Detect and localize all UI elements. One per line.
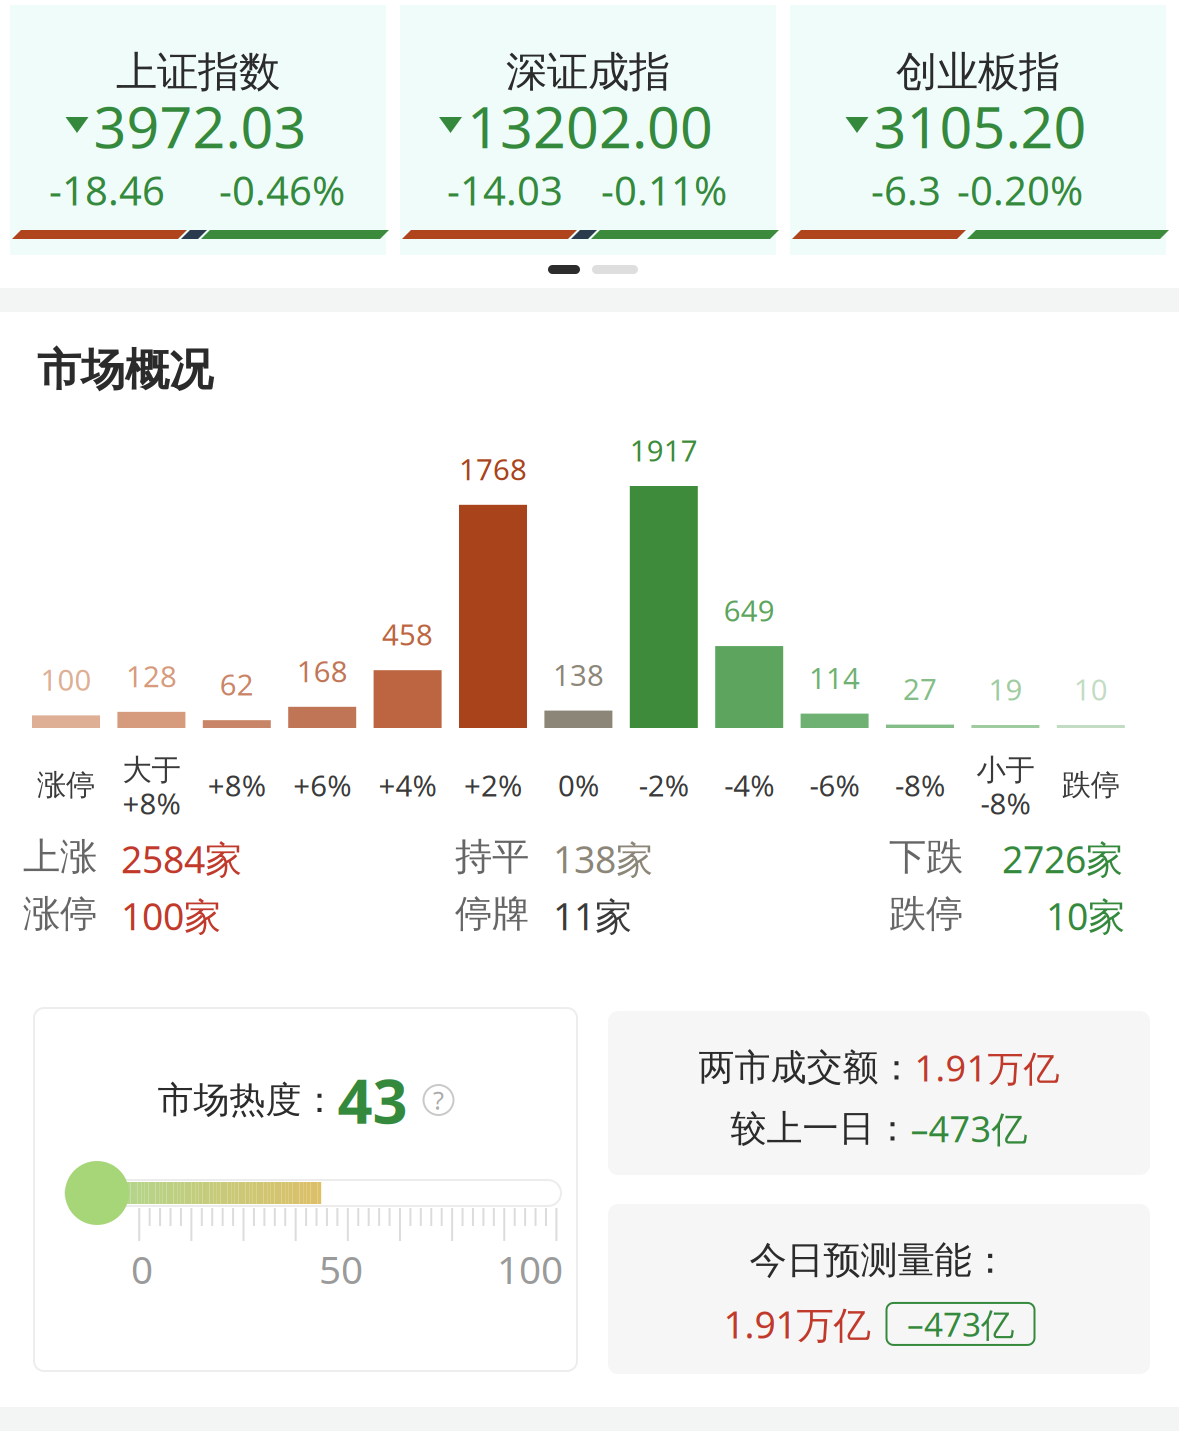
staticText: 1768: [459, 449, 527, 488]
staticText: 100: [40, 660, 91, 699]
staticText: 市场概况: [37, 343, 213, 397]
staticText: 62: [220, 665, 254, 704]
button[interactable]: 创业板指: [790, 5, 1166, 255]
staticText: 168: [297, 651, 348, 690]
staticText: +8%: [208, 765, 266, 804]
staticText: 2726家: [1002, 834, 1123, 884]
staticText: –473亿: [907, 1302, 1014, 1346]
staticText: 两市成交额：: [698, 1045, 914, 1090]
staticText: 649: [724, 591, 775, 630]
staticText: 涨停: [23, 891, 97, 937]
staticText: -2%: [639, 765, 689, 804]
staticText: 持平: [455, 834, 529, 880]
staticText: 114: [809, 658, 860, 697]
button[interactable]: 上证指数: [10, 5, 386, 255]
staticText: 深证成指: [506, 47, 670, 97]
staticText: 跌停: [889, 891, 963, 937]
staticText: 100家: [121, 891, 221, 941]
staticText: 10家: [1046, 891, 1125, 941]
staticText: -0.20%: [957, 163, 1083, 216]
staticText: 138家: [553, 834, 653, 884]
staticText: 跌停: [1062, 767, 1120, 803]
staticText: 0: [131, 1243, 153, 1295]
staticText: -4%: [724, 765, 774, 804]
staticText: 27: [903, 669, 937, 708]
staticText: -6.3: [871, 163, 941, 216]
staticText: 停牌: [455, 891, 529, 937]
staticText: 创业板指: [896, 47, 1060, 97]
staticText: 2584家: [121, 834, 242, 884]
staticText: 3972.03: [93, 88, 306, 164]
staticText: 较上一日：: [730, 1106, 910, 1150]
staticText: 3105.20: [873, 88, 1086, 164]
staticText: 1917: [630, 430, 698, 469]
staticText: 13202.00: [467, 88, 713, 164]
staticText: 458: [382, 615, 433, 654]
staticText: -0.46%: [219, 163, 345, 216]
staticText: +4%: [379, 765, 437, 804]
staticText: 138: [553, 655, 604, 694]
staticText: -8%: [980, 783, 1030, 822]
staticText: 市场热度：: [157, 1078, 337, 1122]
staticText: 上证指数: [116, 47, 280, 97]
staticText: 今日预测量能：: [749, 1237, 1008, 1283]
staticText: -0.11%: [601, 163, 727, 216]
staticText: 11家: [553, 891, 632, 941]
staticText: -8%: [895, 765, 945, 804]
staticText: +2%: [464, 765, 522, 804]
staticText: 小于: [976, 752, 1034, 788]
staticText: 下跌: [889, 834, 963, 880]
staticText: 0%: [558, 765, 599, 804]
staticText: -14.03: [447, 163, 563, 216]
staticText: +6%: [293, 765, 351, 804]
staticText: 10: [1074, 669, 1108, 708]
staticText: -6%: [810, 765, 860, 804]
staticText: 19: [988, 669, 1022, 708]
staticText: –473亿: [910, 1104, 1027, 1152]
staticText: 100: [497, 1243, 563, 1295]
staticText: ?: [433, 1083, 444, 1117]
staticText: +8%: [122, 783, 180, 822]
staticText: 上涨: [23, 834, 97, 880]
staticText: 1.91万亿: [914, 1044, 1059, 1091]
staticText: 50: [319, 1243, 363, 1295]
staticText: 涨停: [37, 767, 95, 803]
button[interactable]: 深证成指: [400, 5, 776, 255]
staticText: 大于: [122, 752, 180, 788]
staticText: 1.91万亿: [723, 1299, 870, 1349]
staticText: -18.46: [49, 163, 165, 216]
staticText: 128: [126, 656, 177, 695]
staticText: 43: [337, 1059, 407, 1141]
